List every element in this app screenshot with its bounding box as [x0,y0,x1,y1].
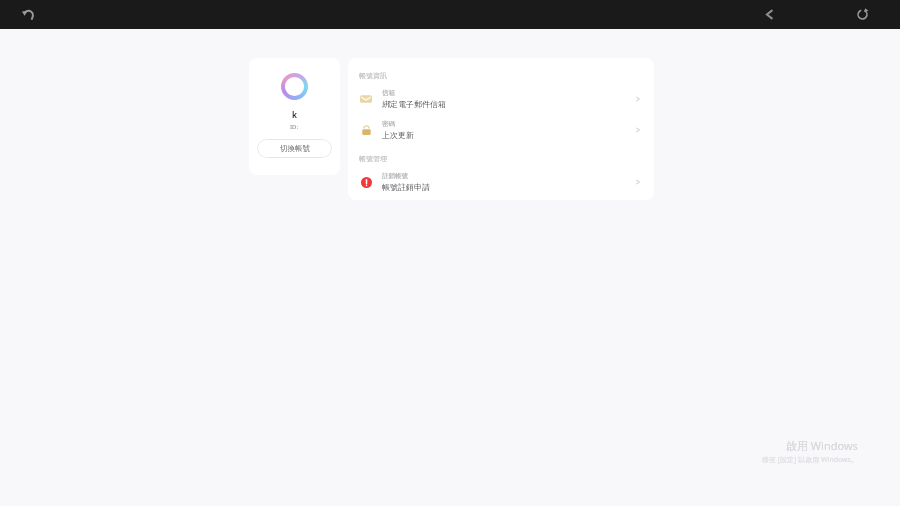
staticText: 移至 [設定] 以啟用 Windows。 [762,455,858,465]
button[interactable]: 註銷帳號 [348,166,654,197]
staticText: 註銷帳號 [382,172,408,180]
button[interactable]: Navigate back [755,0,784,29]
button[interactable]: 信箱 [348,83,654,114]
staticText: 密碼 [382,120,395,128]
staticText: 帳號資訊 [359,71,387,80]
staticText: k [292,109,297,120]
staticText: 綁定電子郵件信箱 [382,99,446,109]
staticText: 帳號註銷申請 [382,182,430,192]
button[interactable]: Refresh [848,0,877,29]
staticText: 切換帳號 [280,144,310,153]
staticText: 啟用 Windows [786,438,858,453]
button[interactable]: 切換帳號 [257,139,332,158]
staticText: 信箱 [382,89,395,97]
button[interactable]: 密碼 [348,114,654,145]
staticText: 上次更新 [382,130,414,140]
staticText: 帳號管理 [359,154,387,163]
staticText: ID: [290,123,299,131]
button[interactable]: Back [14,0,43,29]
